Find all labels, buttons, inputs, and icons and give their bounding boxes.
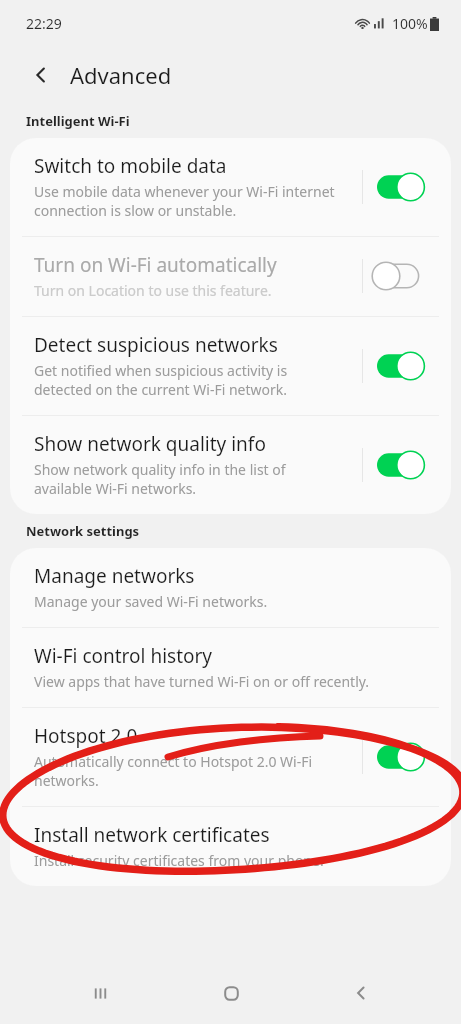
staticText: Manage your saved Wi-Fi networks. <box>34 592 268 611</box>
button[interactable]: Turn on Wi-Fi automatically <box>377 261 429 291</box>
button[interactable]: Recent apps <box>70 963 130 1023</box>
staticText: Show network quality info <box>34 431 266 457</box>
button[interactable]: Switch to mobile data <box>10 138 451 236</box>
button[interactable]: Detect suspicious networks <box>10 317 451 415</box>
staticText: Intelligent Wi-Fi <box>26 112 130 130</box>
staticText: Switch to mobile data <box>34 153 227 179</box>
staticText: View apps that have turned Wi-Fi on or o… <box>34 672 370 691</box>
button[interactable]: Turn on Wi-Fi automatically <box>10 237 451 316</box>
button[interactable]: Detect suspicious networks <box>377 351 429 381</box>
staticText: 100% <box>392 14 428 33</box>
button[interactable]: Show network quality info <box>377 450 429 480</box>
staticText: Use mobile data whenever your Wi-Fi inte… <box>34 182 335 220</box>
staticText: 22:29 <box>26 14 62 33</box>
button[interactable]: Manage networks <box>10 548 451 627</box>
staticText: Advanced <box>70 60 172 90</box>
staticText: Turn on Location to use this feature. <box>34 281 272 300</box>
staticText: Wi-Fi control history <box>34 643 213 669</box>
button[interactable]: Hotspot 2.0 <box>377 742 429 772</box>
staticText: Get notified when suspicious activity is… <box>34 361 288 399</box>
button[interactable]: Hotspot 2.0 <box>10 708 451 806</box>
button[interactable]: Install network certificates <box>10 807 451 886</box>
staticText: Automatically connect to Hotspot 2.0 Wi-… <box>34 752 313 790</box>
button[interactable]: Switch to mobile data <box>377 172 429 202</box>
staticText: Show network quality info in the list of… <box>34 460 286 498</box>
staticText: Manage networks <box>34 563 195 589</box>
button[interactable]: Show network quality info <box>10 416 451 514</box>
staticText: Hotspot 2.0 <box>34 723 138 749</box>
staticText: Install network certificates <box>34 822 270 848</box>
staticText: Detect suspicious networks <box>34 332 278 358</box>
button[interactable]: Back <box>331 963 391 1023</box>
staticText: Install security certificates from your … <box>34 851 324 870</box>
staticText: Network settings <box>26 522 140 540</box>
button[interactable]: Back <box>24 58 58 92</box>
button[interactable]: Home <box>201 963 261 1023</box>
staticText: Turn on Wi-Fi automatically <box>34 252 277 278</box>
button[interactable]: Wi-Fi control history <box>10 628 451 707</box>
